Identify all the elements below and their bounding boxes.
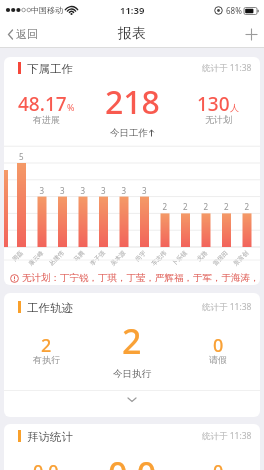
- staticText: 2: [122, 318, 142, 364]
- staticText: 工作轨迹: [27, 301, 73, 313]
- staticText: 11:39: [120, 4, 145, 17]
- staticText: 130: [197, 91, 230, 117]
- button[interactable]: 返回: [7, 27, 38, 41]
- staticText: 0: [213, 333, 224, 358]
- staticText: 2: [41, 333, 52, 358]
- staticText: 请假: [209, 354, 227, 365]
- staticText: 中国移动: [31, 5, 63, 15]
- staticText: 今日执行: [113, 368, 151, 380]
- staticText: 有执行: [33, 354, 60, 365]
- staticText: 拜访统计: [27, 430, 73, 442]
- staticText: %: [67, 101, 75, 113]
- staticText: 人: [230, 102, 239, 113]
- button[interactable]: 无计划：丁宁锐，丁琪，丁莹，严辉福，于军，于海涛，代: [10, 270, 260, 285]
- staticText: 统计于 11:38: [202, 62, 252, 74]
- staticText: 0.0: [33, 459, 59, 470]
- staticText: 有进展: [33, 114, 60, 125]
- staticText: 今日工作: [110, 127, 148, 139]
- button[interactable]: [245, 28, 258, 41]
- staticText: 68%: [226, 5, 242, 16]
- staticText: 218: [105, 80, 160, 124]
- staticText: 报表: [118, 25, 146, 43]
- staticText: 无计划：丁宁锐，丁琪，丁莹，严辉福，于军，于海涛，代: [22, 272, 260, 284]
- staticText: 0: [213, 459, 224, 470]
- staticText: 下属工作: [27, 62, 73, 74]
- staticText: 统计于 11:38: [202, 301, 252, 313]
- staticText: 0.0: [108, 451, 157, 470]
- staticText: 返回: [16, 27, 38, 41]
- staticText: 统计于 11:38: [202, 430, 252, 442]
- staticText: 无计划: [205, 114, 232, 125]
- button[interactable]: [112, 393, 152, 407]
- staticText: 48.17: [18, 91, 67, 117]
